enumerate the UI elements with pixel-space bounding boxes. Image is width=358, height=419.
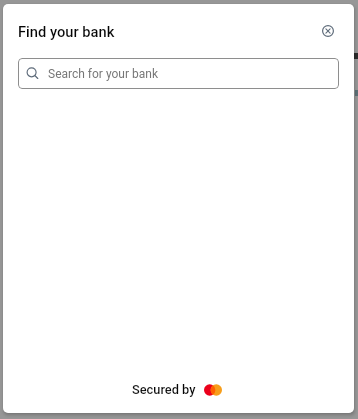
button[interactable]: Close bbox=[314, 17, 342, 45]
staticText: Secured by bbox=[132, 382, 196, 397]
staticText: Find your bank bbox=[18, 23, 115, 40]
staticText: Search for your bank bbox=[48, 67, 158, 81]
button[interactable]: Search for your bank bbox=[18, 58, 339, 89]
other: Mastercard bbox=[204, 384, 222, 396]
